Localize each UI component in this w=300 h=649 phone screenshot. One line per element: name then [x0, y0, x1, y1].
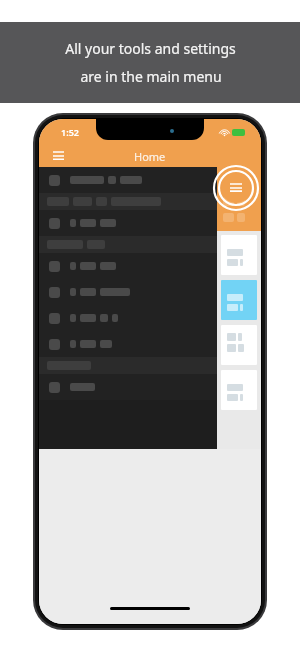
button[interactable]	[39, 357, 217, 374]
button[interactable]	[221, 235, 257, 275]
button[interactable]	[221, 370, 257, 410]
button[interactable]	[39, 279, 217, 305]
button[interactable]	[221, 325, 257, 365]
staticText: All your tools and settings	[65, 39, 236, 58]
button[interactable]: Main menu highlight	[213, 165, 259, 211]
button[interactable]	[39, 167, 217, 193]
button[interactable]	[39, 305, 217, 331]
button[interactable]	[39, 236, 217, 253]
button[interactable]	[39, 253, 217, 279]
button[interactable]	[221, 280, 257, 320]
button[interactable]	[39, 193, 217, 210]
button[interactable]	[39, 210, 217, 236]
staticText: are in the main menu	[80, 67, 222, 86]
button[interactable]: Open navigation menu	[47, 145, 69, 167]
staticText: 1:52	[61, 126, 79, 138]
staticText: Home	[134, 149, 166, 164]
button[interactable]	[39, 331, 217, 357]
button[interactable]	[39, 374, 217, 400]
